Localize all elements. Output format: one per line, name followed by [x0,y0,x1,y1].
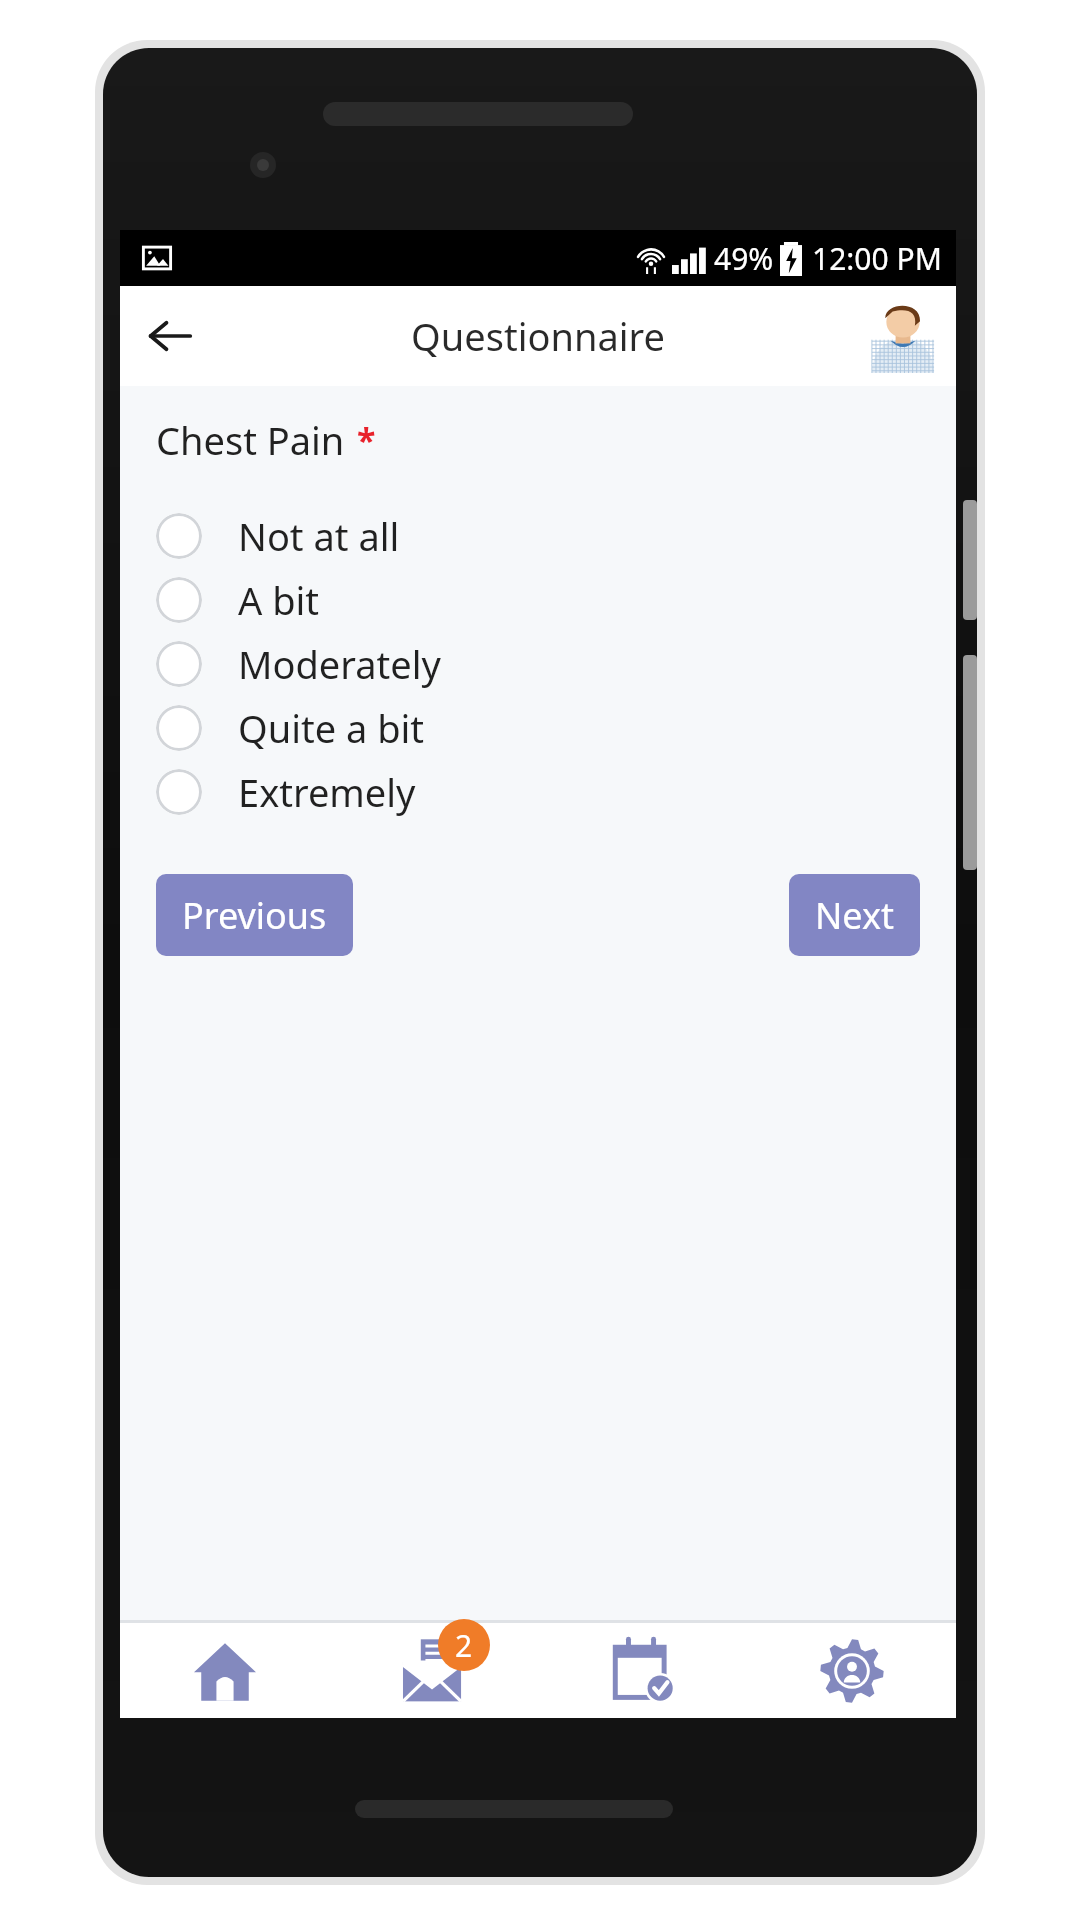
button[interactable]: Appointments [538,1623,747,1718]
staticText: Next [815,891,894,940]
staticText: A bit [238,574,320,626]
button[interactable]: Next [789,874,920,956]
button[interactable]: A bit [120,568,956,632]
button[interactable]: Previous [156,874,353,956]
button[interactable]: Messages [329,1623,538,1718]
staticText: * [357,417,376,463]
button[interactable]: Extremely [120,760,956,824]
button[interactable]: Moderately [120,632,956,696]
button[interactable]: Home [120,1623,329,1718]
staticText: Previous [182,891,327,940]
staticText: 49% [714,238,774,279]
button[interactable]: Quite a bit [120,696,956,760]
staticText: 12:00 PM [812,238,942,279]
button[interactable]: Profile [864,297,942,375]
button[interactable]: Not at all [120,504,956,568]
staticText: Questionnaire [411,310,665,362]
staticText: Not at all [238,510,400,562]
staticText: Chest Pain [156,414,345,466]
staticText: 2 [455,1625,473,1666]
staticText: Quite a bit [238,702,425,754]
staticText: Moderately [238,638,441,690]
button[interactable]: Settings [747,1623,956,1718]
button[interactable]: Back [134,300,206,372]
staticText: Extremely [238,766,416,818]
